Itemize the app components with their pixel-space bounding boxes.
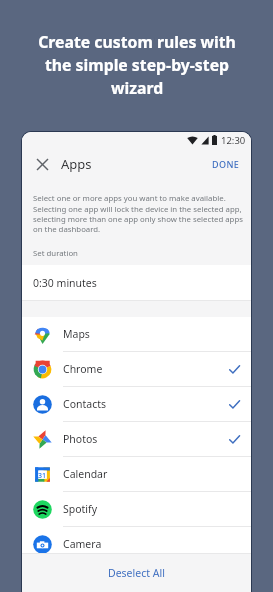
button[interactable]: Maps: [22, 317, 251, 351]
button[interactable]: Photos: [22, 422, 251, 456]
staticText: Select one or more apps you want to make…: [33, 193, 243, 234]
staticText: Apps: [61, 155, 92, 173]
button[interactable]: Chrome: [22, 352, 251, 386]
button[interactable]: 31: [22, 457, 251, 491]
staticText: Deselect All: [108, 566, 165, 580]
button[interactable]: Contacts: [22, 387, 251, 421]
staticText: Maps: [63, 327, 90, 341]
button[interactable]: Deselect All: [22, 554, 251, 592]
staticText: 0:30 minutes: [33, 276, 97, 290]
staticText: Contacts: [63, 397, 107, 411]
staticText: 12:30: [221, 134, 246, 147]
button[interactable]: 0:30 minutes: [22, 265, 251, 300]
staticText: 31: [38, 471, 47, 481]
staticText: Camera: [63, 537, 102, 551]
staticText: DONE: [212, 158, 240, 170]
staticText: Photos: [63, 432, 98, 446]
staticText: Chrome: [63, 362, 103, 376]
staticText: Create custom rules with the simple step…: [32, 31, 242, 99]
button[interactable]: Spotify: [22, 492, 251, 526]
button[interactable]: Close: [31, 153, 53, 175]
staticText: Calendar: [63, 467, 108, 481]
staticText: Set duration: [33, 248, 78, 259]
button[interactable]: DONE: [201, 152, 251, 176]
button[interactable]: Camera: [22, 527, 251, 561]
staticText: Spotify: [63, 502, 98, 516]
